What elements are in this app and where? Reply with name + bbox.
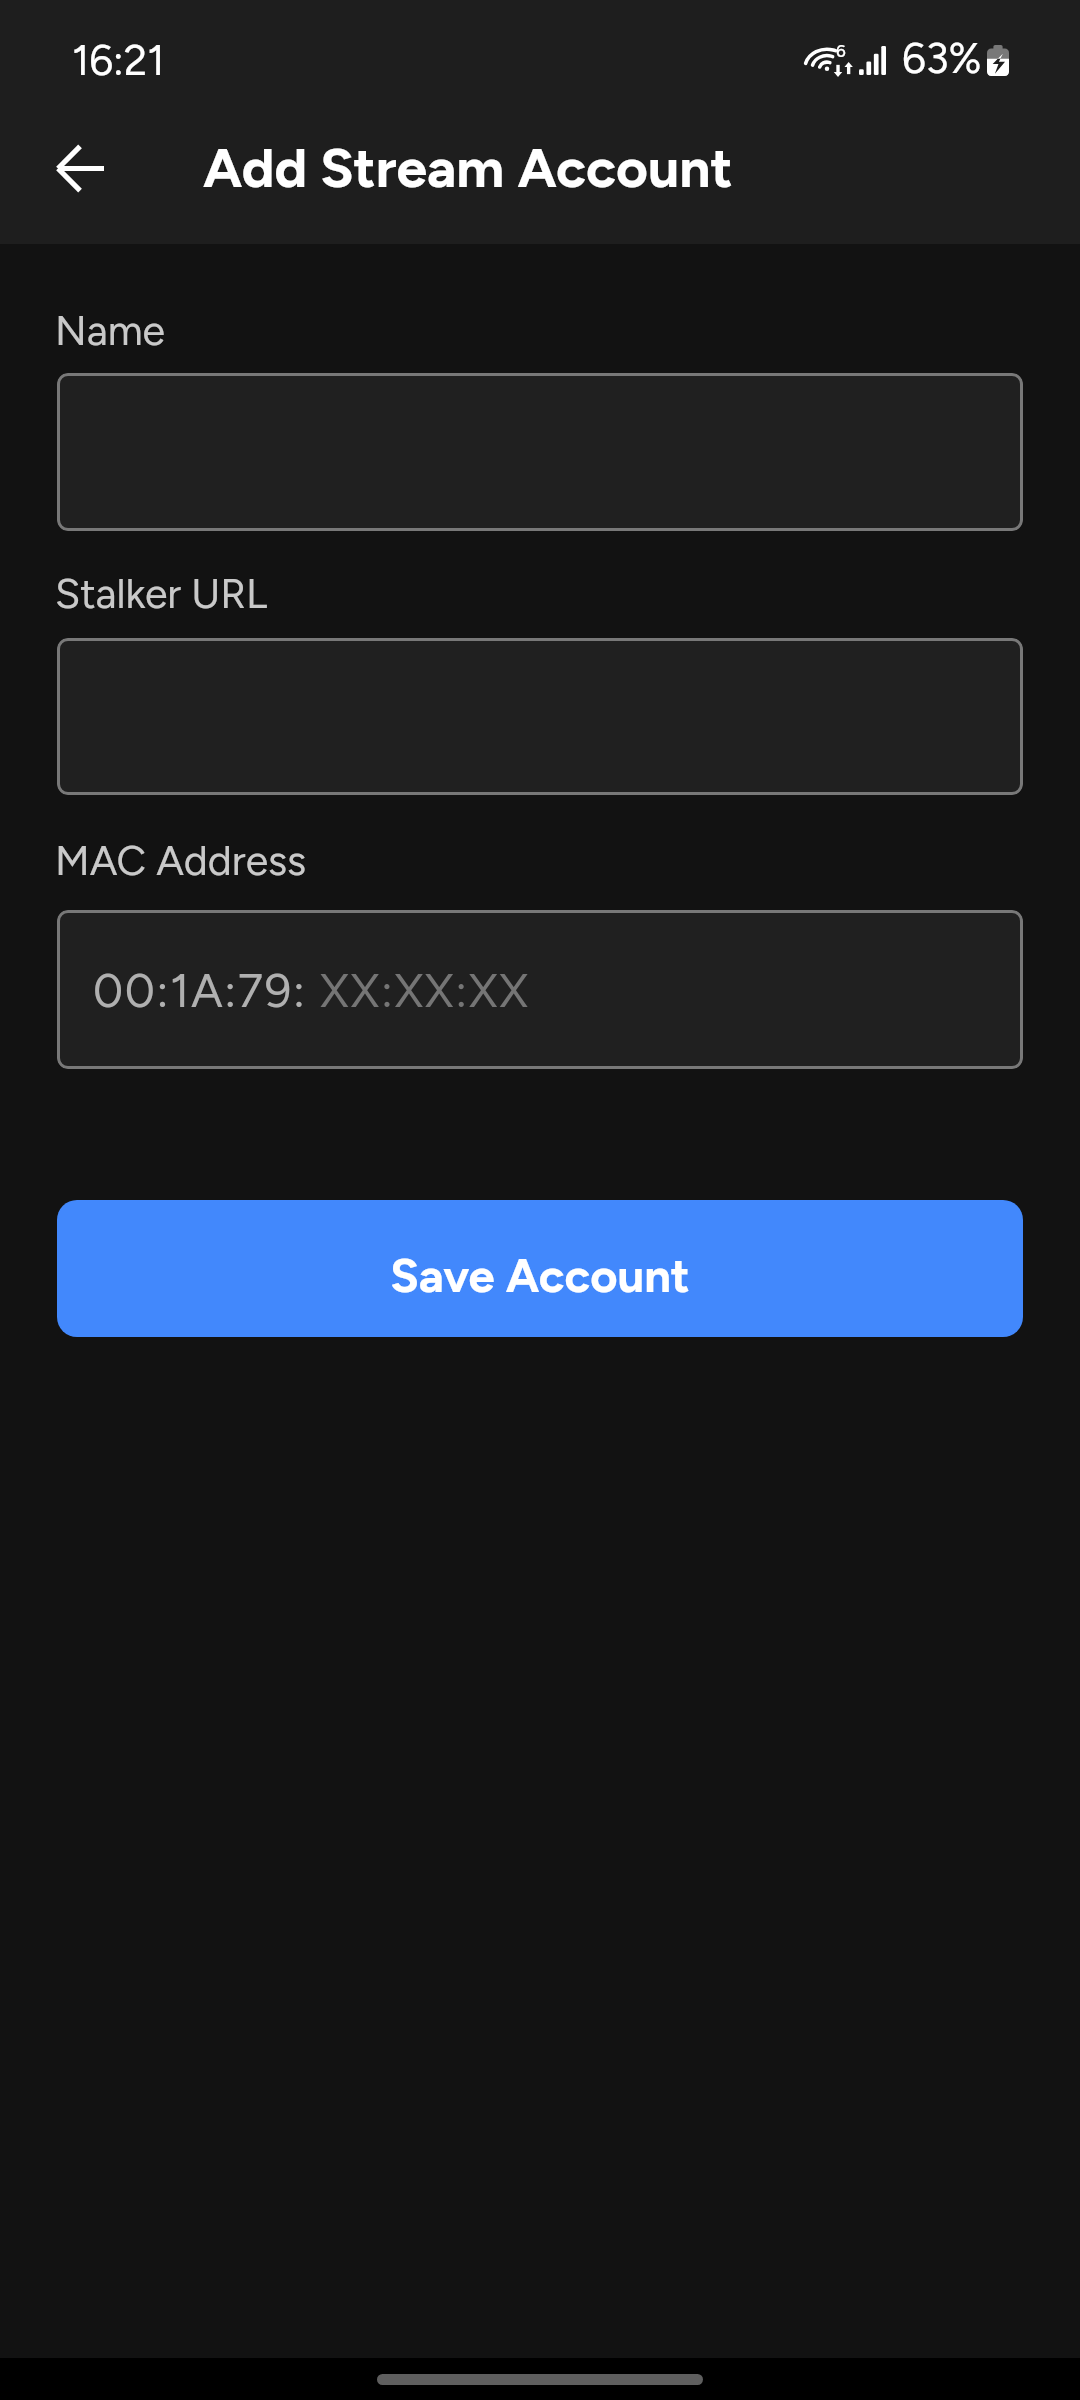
button[interactable] [57,638,1023,795]
button[interactable]: Save Account [57,1200,1023,1337]
staticText: XX:XX:XX [320,962,530,1018]
staticText: 00:1A:79: [93,962,320,1018]
staticText: Name [55,306,165,355]
staticText: Stalker URL [55,569,268,618]
button[interactable]: 00:1A:79: [57,910,1023,1069]
staticText: Save Account [390,1247,690,1303]
button[interactable]: Back [33,120,129,216]
staticText: Add Stream Account [203,135,733,201]
button[interactable] [57,373,1023,531]
staticText: 63% [902,33,982,83]
staticText: 6 [836,41,846,61]
staticText: MAC Address [55,836,307,885]
staticText: 16:21 [72,35,165,85]
